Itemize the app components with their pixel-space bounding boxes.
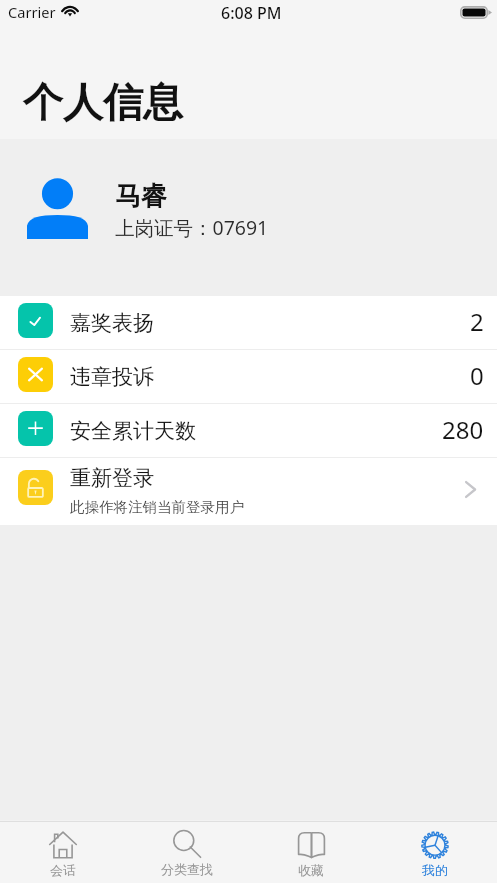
button[interactable]: 分类查找 (125, 822, 249, 883)
staticText: 2 (470, 305, 484, 338)
staticText: 安全累计天数 (70, 418, 196, 444)
button[interactable]: 违章投诉 (0, 350, 497, 403)
button[interactable]: 安全累计天数 (0, 404, 497, 457)
staticText: 0 (470, 359, 484, 392)
staticText: 马睿 (115, 180, 167, 213)
staticText: 我的 (422, 862, 448, 878)
staticText: 会话 (50, 862, 76, 878)
button[interactable]: 重新登录 (0, 458, 497, 525)
staticText: 此操作将注销当前登录用户 (70, 498, 244, 516)
button[interactable]: 嘉奖表扬 (0, 296, 497, 349)
other: 用户头像 (27, 178, 88, 239)
staticText: 6:08 PM (221, 2, 282, 24)
staticText: 违章投诉 (70, 364, 154, 390)
staticText: 收藏 (298, 862, 324, 878)
staticText: 个人信息 (23, 77, 183, 127)
button[interactable]: 收藏 (249, 822, 373, 883)
staticText: 分类查找 (161, 861, 213, 877)
button[interactable]: 用户头像 (0, 139, 497, 296)
button[interactable]: 我的 (373, 822, 497, 883)
staticText: 280 (442, 413, 484, 446)
staticText: 上岗证号：07691 (115, 214, 269, 241)
staticText: Carrier (8, 2, 56, 22)
staticText: 嘉奖表扬 (70, 310, 154, 336)
staticText: 重新登录 (70, 465, 154, 491)
button[interactable]: 会话 (0, 822, 125, 883)
